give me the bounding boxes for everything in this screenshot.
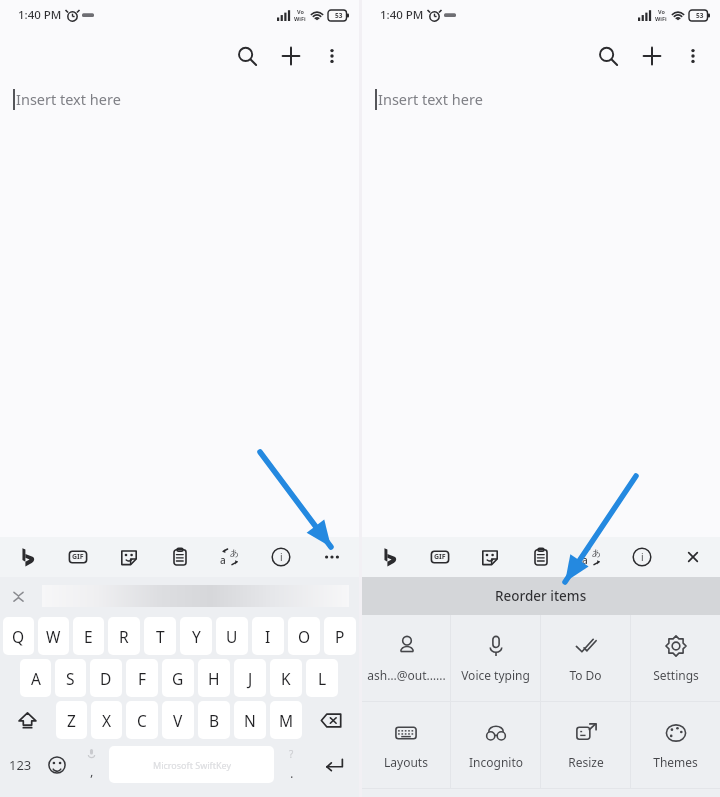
staticText: 53 bbox=[696, 11, 704, 20]
staticText: Insert text here bbox=[16, 89, 121, 109]
staticText: a bbox=[582, 553, 588, 567]
button[interactable]: Clipboard bbox=[165, 542, 195, 572]
button[interactable]: Translate bbox=[215, 542, 245, 572]
staticText: C bbox=[137, 710, 147, 731]
staticText: あ bbox=[230, 547, 240, 558]
button[interactable]: Stickers bbox=[475, 542, 505, 572]
button[interactable]: A bbox=[20, 659, 51, 697]
button[interactable]: Close bbox=[678, 542, 708, 572]
staticText: 53 bbox=[335, 11, 343, 20]
button[interactable]: K bbox=[270, 659, 302, 697]
button[interactable]: U bbox=[216, 617, 248, 655]
button[interactable]: G bbox=[162, 659, 194, 697]
button[interactable]: W bbox=[38, 617, 69, 655]
button[interactable]: Y bbox=[180, 617, 212, 655]
button[interactable]: Settings bbox=[631, 615, 720, 702]
button[interactable]: Search bbox=[586, 34, 630, 78]
button[interactable]: Add bbox=[269, 34, 313, 78]
button[interactable]: Themes bbox=[631, 702, 720, 789]
button[interactable]: X bbox=[91, 701, 122, 739]
button[interactable]: ash…@out.….. bbox=[362, 615, 450, 702]
button[interactable]: N bbox=[234, 701, 266, 739]
button[interactable]: Z bbox=[56, 701, 87, 739]
staticText: To Do bbox=[569, 667, 602, 683]
button[interactable]: Backspace bbox=[304, 699, 358, 741]
staticText: H bbox=[208, 668, 220, 689]
staticText: D bbox=[100, 668, 112, 689]
button[interactable]: Bing search bbox=[12, 542, 42, 572]
button[interactable]: Period bbox=[274, 741, 309, 788]
button[interactable]: S bbox=[55, 659, 86, 697]
button[interactable]: D bbox=[90, 659, 122, 697]
button[interactable]: Q bbox=[3, 617, 34, 655]
staticText: Settings bbox=[653, 667, 699, 683]
button[interactable]: F bbox=[126, 659, 158, 697]
button[interactable]: P bbox=[324, 617, 356, 655]
staticText: WiFi bbox=[655, 15, 667, 22]
staticText: Voice typing bbox=[461, 667, 530, 683]
button[interactable]: Emoji bbox=[39, 741, 74, 788]
staticText: i bbox=[280, 550, 283, 564]
staticText: L bbox=[318, 668, 327, 689]
button[interactable]: Comma bbox=[74, 741, 109, 788]
button[interactable]: More options bbox=[674, 37, 712, 75]
button[interactable]: V bbox=[162, 701, 194, 739]
staticText: ash…@out.….. bbox=[367, 667, 446, 683]
button[interactable]: Expand bbox=[7, 585, 29, 607]
button[interactable]: To Do bbox=[541, 615, 630, 702]
staticText: ? bbox=[289, 747, 294, 761]
staticText: V bbox=[173, 710, 183, 731]
button[interactable]: Clipboard bbox=[526, 542, 556, 572]
staticText: 123 bbox=[9, 756, 32, 774]
staticText: T bbox=[156, 626, 165, 647]
staticText: . bbox=[290, 764, 294, 782]
button[interactable]: Translate bbox=[577, 542, 607, 572]
staticText: GIF bbox=[72, 552, 84, 562]
button[interactable]: 123 bbox=[1, 741, 39, 788]
button[interactable]: Search bbox=[225, 34, 269, 78]
button[interactable]: M bbox=[270, 701, 302, 739]
staticText: A bbox=[31, 668, 41, 689]
staticText: Vo bbox=[658, 8, 665, 15]
button[interactable]: Shift bbox=[1, 699, 54, 741]
button[interactable]: Space bbox=[109, 746, 274, 783]
staticText: , bbox=[90, 762, 94, 780]
staticText: Themes bbox=[653, 754, 698, 770]
button[interactable]: Resize bbox=[541, 702, 630, 789]
staticText: N bbox=[244, 710, 256, 731]
staticText: Vo bbox=[297, 8, 304, 15]
button[interactable]: GIF bbox=[425, 542, 455, 572]
button[interactable]: I bbox=[252, 617, 284, 655]
button[interactable]: T bbox=[144, 617, 176, 655]
button[interactable]: Info bbox=[627, 542, 657, 572]
button[interactable]: R bbox=[108, 617, 140, 655]
button[interactable]: Reorder items bbox=[362, 577, 720, 615]
button[interactable]: More options bbox=[313, 37, 351, 75]
staticText: 1:40 PM bbox=[380, 7, 424, 23]
button[interactable]: H bbox=[198, 659, 230, 697]
button[interactable]: E bbox=[73, 617, 104, 655]
staticText: P bbox=[335, 626, 345, 647]
button[interactable]: Add bbox=[630, 34, 674, 78]
staticText: Y bbox=[192, 626, 201, 647]
button[interactable]: More bbox=[317, 542, 347, 572]
button[interactable]: Voice typing bbox=[451, 615, 540, 702]
staticText: 1:40 PM bbox=[18, 7, 62, 23]
staticText: Insert text here bbox=[378, 89, 483, 109]
button[interactable]: Enter bbox=[309, 741, 358, 788]
staticText: GIF bbox=[434, 552, 446, 562]
button[interactable]: C bbox=[126, 701, 158, 739]
button[interactable]: B bbox=[198, 701, 230, 739]
button[interactable]: Incognito bbox=[451, 702, 540, 789]
button[interactable]: Info bbox=[266, 542, 296, 572]
staticText: I bbox=[265, 626, 271, 647]
button[interactable]: Bing search bbox=[374, 542, 404, 572]
button[interactable]: GIF bbox=[63, 542, 93, 572]
staticText: U bbox=[226, 626, 238, 647]
button[interactable]: Stickers bbox=[114, 542, 144, 572]
button[interactable]: J bbox=[234, 659, 266, 697]
button[interactable]: L bbox=[306, 659, 338, 697]
button[interactable]: Layouts bbox=[362, 702, 450, 789]
button[interactable]: O bbox=[288, 617, 320, 655]
staticText: B bbox=[209, 710, 220, 731]
